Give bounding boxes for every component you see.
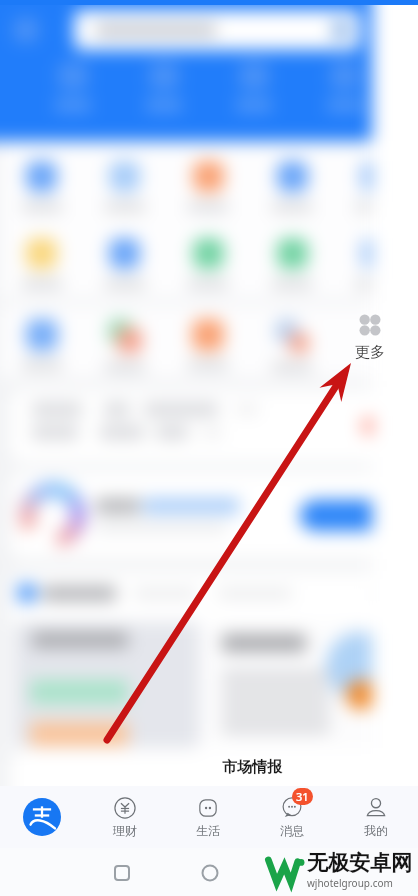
staticText: 更多 xyxy=(355,343,385,362)
button[interactable] xyxy=(250,306,334,372)
button[interactable] xyxy=(83,221,166,289)
button[interactable] xyxy=(166,221,250,289)
button[interactable] xyxy=(250,221,334,289)
staticText: 消息 xyxy=(280,823,304,838)
staticText: 无极安卓网 xyxy=(307,850,412,876)
button[interactable] xyxy=(334,221,418,289)
button[interactable] xyxy=(250,144,334,212)
button[interactable] xyxy=(10,472,408,558)
button[interactable] xyxy=(146,62,182,111)
button[interactable] xyxy=(166,144,250,212)
button[interactable] xyxy=(14,18,38,42)
staticText: 理财 xyxy=(113,823,137,838)
button[interactable] xyxy=(327,62,363,111)
staticText: wjhotelgroup.com xyxy=(307,876,393,890)
button[interactable]: 我的 xyxy=(334,786,418,848)
button[interactable] xyxy=(236,62,272,111)
button[interactable] xyxy=(0,221,83,289)
button[interactable]: 生活 xyxy=(166,786,250,848)
button[interactable] xyxy=(300,500,392,531)
button[interactable] xyxy=(18,572,398,614)
staticText: 市场情报 xyxy=(222,758,282,777)
staticText: 我的 xyxy=(364,823,388,838)
button[interactable] xyxy=(0,306,83,370)
button[interactable] xyxy=(378,18,402,42)
button[interactable] xyxy=(334,144,418,212)
button[interactable] xyxy=(83,306,166,372)
button[interactable] xyxy=(166,306,250,370)
button[interactable] xyxy=(206,622,402,748)
button[interactable] xyxy=(14,622,200,748)
button[interactable]: 理财 xyxy=(83,786,166,848)
staticText: 31 xyxy=(296,789,309,804)
button[interactable] xyxy=(55,62,91,111)
button[interactable] xyxy=(83,144,166,212)
staticText: 生活 xyxy=(196,823,220,838)
button[interactable]: 更多 xyxy=(340,310,400,372)
button[interactable]: 31 xyxy=(250,786,334,848)
button[interactable] xyxy=(74,10,360,50)
button[interactable]: 支付宝 首页 xyxy=(0,786,83,848)
button[interactable] xyxy=(0,144,83,212)
button[interactable] xyxy=(10,390,408,462)
